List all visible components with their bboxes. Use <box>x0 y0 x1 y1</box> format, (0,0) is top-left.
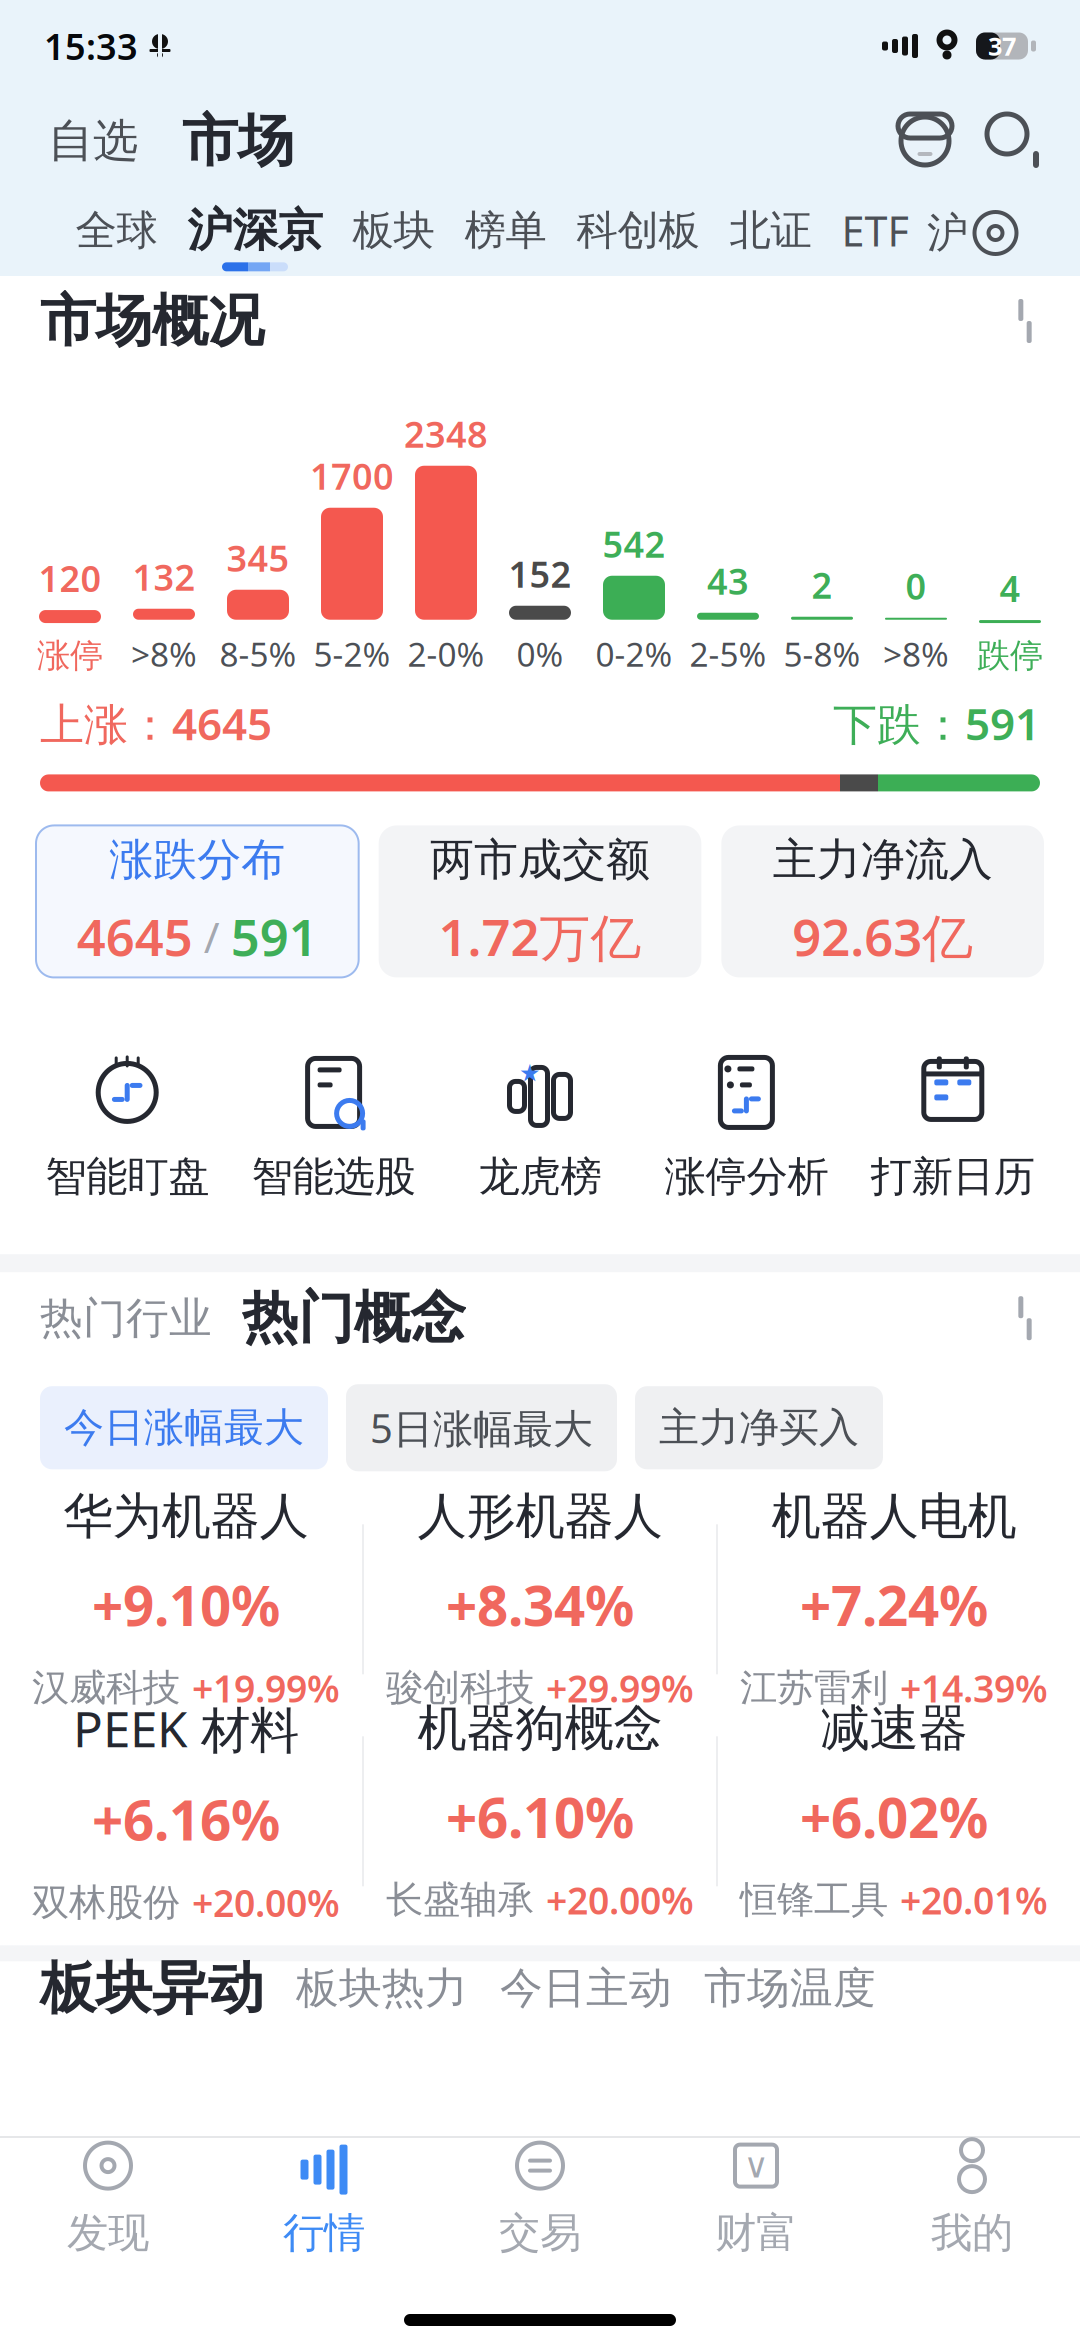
staticText: +20.01% <box>900 1875 1048 1925</box>
staticText: 主力净买入 <box>659 1403 859 1452</box>
button[interactable]: 两市成交额 <box>379 825 701 977</box>
button[interactable]: 5日涨幅最大 <box>346 1384 617 1471</box>
staticText: +9.10% <box>92 1568 280 1641</box>
staticText: 542 <box>602 520 665 568</box>
staticText: 市场温度 <box>704 1962 876 2014</box>
staticText: 板块热力 <box>296 1962 468 2014</box>
staticText: 行情 <box>283 2208 365 2258</box>
staticText: 591 <box>231 903 318 970</box>
staticText: 沪 <box>927 208 968 258</box>
button[interactable]: 发现 <box>0 2138 216 2258</box>
staticText: 发现 <box>67 2208 149 2258</box>
button[interactable]: 打新日历 <box>850 1055 1056 1202</box>
button[interactable]: ★ <box>437 1055 643 1202</box>
button[interactable]: 北证 <box>714 197 826 269</box>
staticText: 2-5% <box>689 632 766 676</box>
staticText: 0% <box>516 632 563 676</box>
staticText: 热门概念 <box>242 1284 466 1353</box>
button[interactable]: 市场概况 <box>0 276 1080 366</box>
staticText: 92.63亿 <box>792 903 973 970</box>
button[interactable]: 主力净买入 <box>635 1386 883 1469</box>
staticText: +20.00% <box>546 1875 694 1925</box>
button[interactable]: ∨ <box>648 2138 864 2258</box>
button[interactable]: 编辑栏目 <box>971 209 1019 257</box>
staticText: 市场概况 <box>40 287 264 355</box>
staticText: 榜单 <box>464 205 546 256</box>
staticText: 2348 <box>404 410 488 458</box>
staticText: 人形机器人 <box>417 1486 662 1546</box>
button[interactable]: 板块 <box>337 197 449 269</box>
button[interactable]: 人形机器人 <box>364 1493 716 1705</box>
button[interactable]: 行情 <box>216 2138 432 2258</box>
staticText: 恒锋工具 <box>740 1877 888 1923</box>
staticText: 机器狗概念 <box>417 1698 662 1758</box>
staticText: 全球 <box>75 205 157 256</box>
staticText: 上涨：4645 <box>40 694 272 752</box>
button[interactable]: 我的 <box>864 2138 1080 2258</box>
button[interactable]: 交易 <box>432 2138 648 2258</box>
staticText: 8-5% <box>219 632 296 676</box>
button[interactable]: 减速器 <box>718 1705 1070 1917</box>
staticText: 智能盯盘 <box>45 1151 209 1202</box>
staticText: 两市成交额 <box>430 833 650 887</box>
button[interactable]: 智能选股 <box>230 1055 437 1202</box>
staticText: 骏创科技 <box>386 1665 534 1711</box>
button[interactable]: 机器人电机 <box>718 1493 1070 1705</box>
staticText: 5-8% <box>783 632 860 676</box>
staticText: 1.72万亿 <box>438 903 641 970</box>
staticText: 1700 <box>310 452 394 500</box>
button[interactable]: 今日涨幅最大 <box>40 1386 328 1469</box>
staticText: 0 <box>905 562 926 610</box>
button[interactable]: 自选 <box>40 103 146 179</box>
staticText: 0-2% <box>595 632 672 676</box>
staticText: +6.16% <box>92 1783 280 1856</box>
staticText: +20.00% <box>192 1878 340 1927</box>
staticText: 双林股份 <box>32 1880 180 1925</box>
button[interactable]: 机器狗概念 <box>364 1705 716 1917</box>
staticText: >8% <box>131 632 197 676</box>
staticText: 板块 <box>352 205 434 256</box>
button[interactable]: ETF <box>826 195 923 271</box>
staticText: 132 <box>132 553 195 601</box>
button[interactable]: 主力净流入 <box>721 825 1044 977</box>
staticText: 交易 <box>499 2208 581 2258</box>
staticText: +29.99% <box>546 1663 694 1713</box>
button[interactable]: 涨跌分布 <box>36 825 359 977</box>
button[interactable]: 个人中心 <box>896 112 954 170</box>
staticText: 机器人电机 <box>771 1486 1016 1546</box>
button[interactable]: 热门行业 <box>0 1272 1080 1364</box>
button[interactable]: 科创板 <box>561 197 714 269</box>
staticText: 涨跌分布 <box>109 833 285 887</box>
staticText: +8.34% <box>446 1568 634 1641</box>
staticText: 打新日历 <box>871 1151 1035 1202</box>
button[interactable]: 市场 <box>172 101 304 181</box>
staticText: 沪深京 <box>187 203 322 258</box>
staticText: / <box>193 908 231 965</box>
staticText: 汉威科技 <box>32 1665 180 1711</box>
staticText: 智能选股 <box>252 1151 416 1202</box>
button[interactable]: 智能盯盘 <box>24 1055 230 1202</box>
button[interactable]: 沪深京 <box>172 195 337 271</box>
staticText: 龙虎榜 <box>478 1151 601 1202</box>
button[interactable]: 搜索 <box>986 113 1040 169</box>
staticText: 减速器 <box>820 1698 967 1758</box>
button[interactable]: 全球 <box>60 197 172 269</box>
button[interactable]: 榜单 <box>449 197 561 269</box>
staticText: >8% <box>883 632 949 676</box>
staticText: 华为机器人 <box>63 1486 308 1546</box>
staticText: 4645 <box>77 903 193 970</box>
staticText: 今日主动 <box>500 1962 672 2014</box>
button[interactable]: 涨停分析 <box>643 1055 850 1202</box>
staticText: 自选 <box>48 113 138 169</box>
staticText: 15:33 <box>44 22 138 70</box>
staticText: 120 <box>38 554 101 602</box>
staticText: 5日涨幅最大 <box>370 1401 593 1454</box>
staticText: 跌停 <box>977 635 1043 676</box>
staticText: 江苏雷利 <box>740 1665 888 1711</box>
staticText: ∨ <box>743 2146 768 2185</box>
button[interactable]: PEEK 材料 <box>10 1705 362 1917</box>
button[interactable]: 华为机器人 <box>10 1493 362 1705</box>
staticText: 今日涨幅最大 <box>64 1403 304 1452</box>
staticText: +7.24% <box>800 1568 988 1641</box>
staticText: 我的 <box>931 2208 1013 2258</box>
